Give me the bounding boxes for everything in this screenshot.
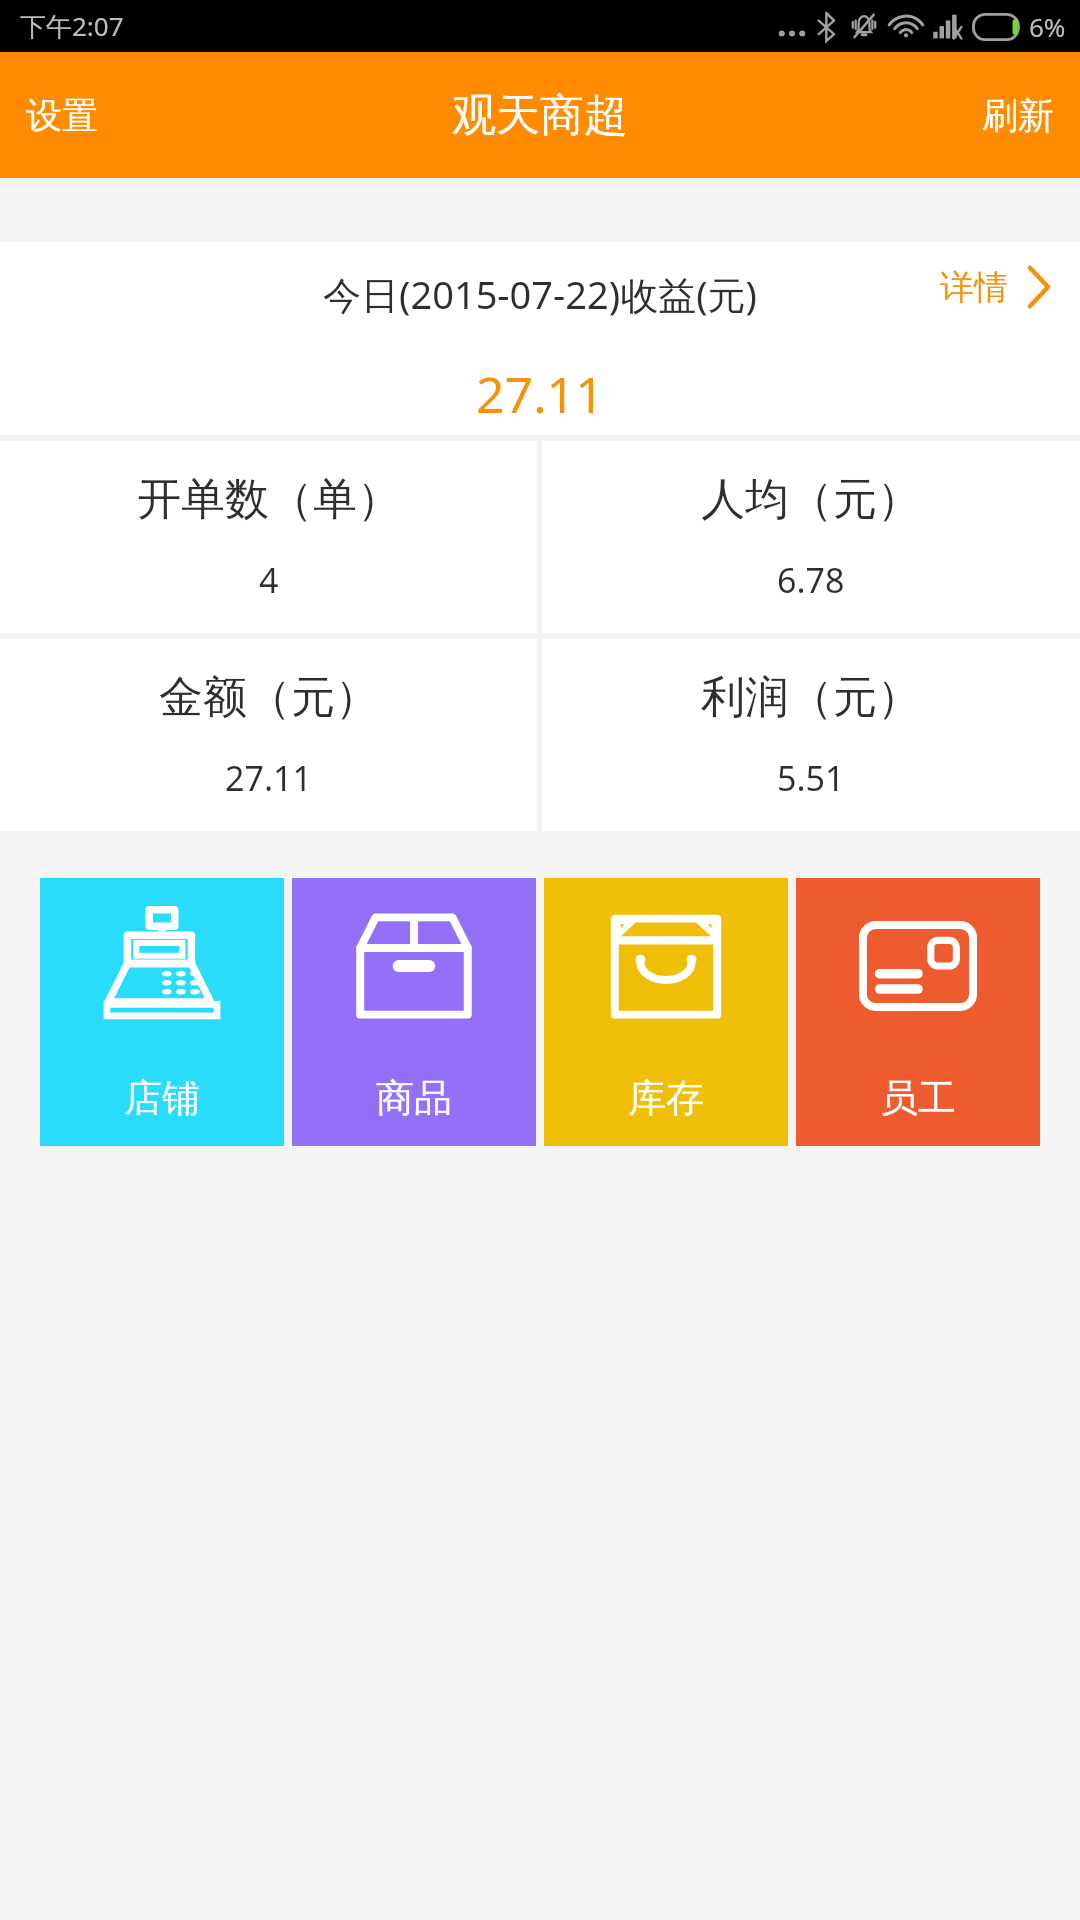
staticText: 6.78 bbox=[777, 557, 845, 603]
staticText: 观天商超 bbox=[452, 88, 628, 143]
staticText: 利润（元） bbox=[701, 670, 921, 725]
staticText: 详情 bbox=[940, 266, 1008, 309]
staticText: 下午2:07 bbox=[20, 8, 124, 44]
staticText: 4 bbox=[259, 557, 279, 603]
button[interactable]: 人均（元） bbox=[542, 441, 1080, 633]
staticText: 设置 bbox=[26, 93, 98, 138]
button[interactable]: 金额（元） bbox=[0, 639, 537, 831]
staticText: 27.11 bbox=[476, 360, 604, 428]
staticText: 今日(2015-07-22)收益(元) bbox=[323, 268, 757, 320]
staticText: 员工 bbox=[880, 1074, 956, 1122]
button[interactable]: 开单数（单） bbox=[0, 441, 537, 633]
button[interactable]: 刷新 bbox=[956, 69, 1080, 162]
button[interactable]: 设置 bbox=[0, 69, 124, 162]
staticText: 人均（元） bbox=[701, 472, 921, 527]
button[interactable]: 详情 bbox=[934, 242, 1080, 320]
staticText: 6% bbox=[1029, 9, 1066, 44]
button[interactable]: 员工 bbox=[796, 878, 1040, 1146]
staticText: 金额（元） bbox=[159, 670, 379, 725]
button[interactable]: 利润（元） bbox=[542, 639, 1080, 831]
button[interactable]: 商品 bbox=[292, 878, 536, 1146]
staticText: 开单数（单） bbox=[137, 472, 401, 527]
staticText: 库存 bbox=[628, 1074, 704, 1122]
staticText: 5.51 bbox=[777, 755, 845, 801]
button[interactable]: 库存 bbox=[544, 878, 788, 1146]
staticText: 商品 bbox=[376, 1074, 452, 1122]
button[interactable]: 店铺 bbox=[40, 878, 284, 1146]
staticText: 刷新 bbox=[982, 93, 1054, 138]
staticText: 店铺 bbox=[124, 1074, 200, 1122]
staticText: 27.11 bbox=[225, 755, 312, 801]
